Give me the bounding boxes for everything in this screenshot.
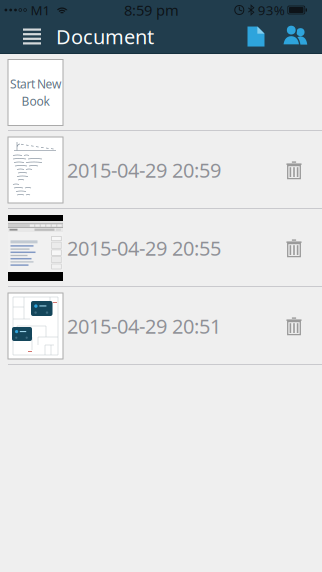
staticText: 93% xyxy=(258,1,285,19)
button[interactable]: New document xyxy=(238,20,274,53)
button[interactable]: Menu xyxy=(12,20,52,53)
button[interactable]: Delete xyxy=(266,131,322,209)
staticText: Start New xyxy=(10,76,61,92)
button[interactable]: Collaborators xyxy=(274,20,316,53)
button[interactable]: 2015-04-29 20:55 xyxy=(0,209,266,287)
staticText: Document xyxy=(56,23,154,50)
staticText: M1 xyxy=(30,1,50,19)
button[interactable]: Delete xyxy=(266,209,322,287)
staticText: 2015-04-29 20:55 xyxy=(67,235,221,261)
staticText: 8:59 pm xyxy=(124,0,179,20)
button[interactable]: Start New xyxy=(0,59,63,125)
button[interactable]: Delete xyxy=(266,287,322,365)
button[interactable]: 2015-04-29 20:51 xyxy=(0,287,266,365)
staticText: Book xyxy=(21,93,49,109)
button[interactable]: 2015-04-29 20:59 xyxy=(0,131,266,209)
staticText: 2015-04-29 20:51 xyxy=(67,313,221,339)
staticText: 2015-04-29 20:59 xyxy=(67,157,221,183)
